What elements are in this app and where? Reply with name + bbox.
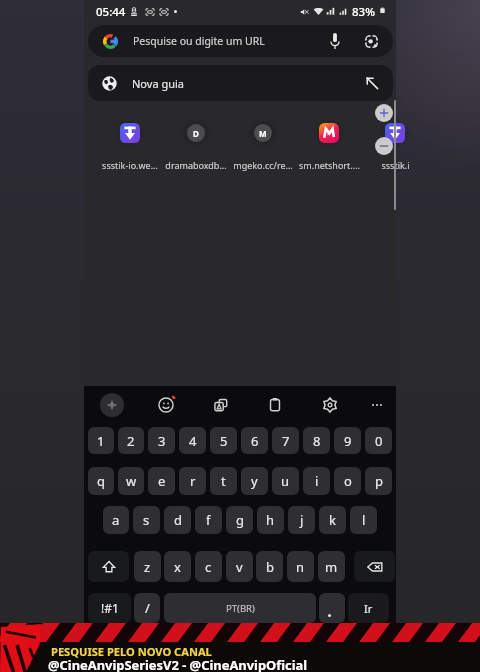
button[interactable]: Pesquise ou digite um URL xyxy=(88,25,393,57)
button[interactable]: 6 xyxy=(241,427,268,454)
button[interactable]: i xyxy=(303,467,330,495)
staticText: PESQUISE PELO NOVO CANAL xyxy=(51,644,212,659)
button[interactable]: c xyxy=(195,551,222,582)
staticText: 83% xyxy=(352,4,375,20)
button[interactable]: v xyxy=(226,551,253,582)
button[interactable]: Shift xyxy=(88,551,129,582)
button[interactable]: ssstik.i xyxy=(362,117,428,173)
other: Voice search xyxy=(329,32,341,50)
button[interactable]: Emoji xyxy=(154,393,178,417)
button[interactable]: 1 xyxy=(88,427,114,454)
button[interactable]: 7 xyxy=(272,427,299,454)
button[interactable]: 2 xyxy=(118,427,144,454)
staticText: o xyxy=(344,472,352,490)
staticText: m xyxy=(325,558,338,576)
button[interactable]: s xyxy=(133,506,160,534)
button[interactable]: Settings xyxy=(318,393,342,417)
button[interactable]: More options xyxy=(365,393,389,417)
staticText: a xyxy=(112,511,120,529)
staticText: p xyxy=(375,472,383,490)
staticText: 05:44 xyxy=(96,4,126,20)
button[interactable]: 8 xyxy=(303,427,330,454)
button[interactable]: 5 xyxy=(210,427,237,454)
staticText: sm.netshort.... xyxy=(299,159,360,171)
button[interactable]: AI assist xyxy=(100,393,124,417)
staticText: d xyxy=(174,511,182,529)
button[interactable]: q xyxy=(88,467,114,495)
button[interactable]: !#1 xyxy=(88,593,131,623)
button[interactable]: t xyxy=(210,467,237,495)
staticText: c xyxy=(205,558,212,576)
staticText: z xyxy=(144,558,151,576)
button[interactable]: 9 xyxy=(334,427,361,454)
staticText: 7 xyxy=(282,432,290,450)
button[interactable]: Nova guia xyxy=(88,65,393,101)
button[interactable]: w xyxy=(118,467,144,495)
button[interactable]: u xyxy=(272,467,299,495)
staticText: 2 xyxy=(127,432,135,450)
staticText: Ir xyxy=(364,601,373,616)
staticText: / xyxy=(145,599,150,617)
staticText: g xyxy=(236,511,244,529)
button[interactable]: e xyxy=(148,467,175,495)
staticText: i xyxy=(315,472,319,490)
staticText: h xyxy=(266,511,275,529)
staticText: u xyxy=(281,472,290,490)
button[interactable]: Clipboard xyxy=(263,393,287,417)
button[interactable]: k xyxy=(319,506,346,534)
other: Google Lens xyxy=(364,34,379,49)
button[interactable]: 0 xyxy=(365,427,392,454)
button[interactable]: j xyxy=(288,506,315,534)
button[interactable]: h xyxy=(257,506,284,534)
button[interactable]: z xyxy=(134,551,161,582)
button[interactable]: Stickers xyxy=(209,393,233,417)
button[interactable]: ssstik-io.we... xyxy=(97,117,163,173)
button[interactable]: d xyxy=(164,506,191,534)
button[interactable]: Ir xyxy=(348,593,389,623)
staticText: 3 xyxy=(158,432,166,450)
staticText: dramaboxdb... xyxy=(165,159,227,171)
other: Open xyxy=(365,76,379,90)
button[interactable]: r xyxy=(179,467,206,495)
button[interactable]: a xyxy=(103,506,129,534)
staticText: Nova guia xyxy=(132,76,184,91)
staticText: k xyxy=(329,511,336,529)
staticText: w xyxy=(126,472,137,490)
button[interactable]: b xyxy=(256,551,283,582)
button[interactable]: Zoom in xyxy=(375,104,393,122)
button[interactable]: l xyxy=(350,506,377,534)
staticText: x xyxy=(174,558,181,576)
button[interactable]: / xyxy=(134,593,160,623)
staticText: r xyxy=(190,472,196,490)
staticText: Pesquise ou digite um URL xyxy=(133,34,265,48)
button[interactable]: Zoom out xyxy=(375,137,393,155)
staticText: q xyxy=(97,472,105,490)
staticText: j xyxy=(300,511,304,529)
button[interactable]: PT(BR) xyxy=(164,593,316,623)
staticText: l xyxy=(362,511,366,529)
staticText: ssstik-io.we... xyxy=(102,159,158,171)
button[interactable]: 3 xyxy=(148,427,175,454)
button[interactable]: m xyxy=(318,551,345,582)
staticText: 6 xyxy=(251,432,259,450)
button[interactable]: n xyxy=(287,551,314,582)
button[interactable]: M xyxy=(230,117,296,173)
staticText: s xyxy=(143,511,150,529)
button[interactable]: o xyxy=(334,467,361,495)
button[interactable]: Backspace xyxy=(354,551,395,582)
staticText: @CineAnvipSeriesV2 - @CineAnvipOficial xyxy=(48,656,308,672)
staticText: 1 xyxy=(97,432,105,450)
button[interactable]: y xyxy=(241,467,268,495)
staticText: b xyxy=(266,558,274,576)
button[interactable]: g xyxy=(226,506,253,534)
button[interactable] xyxy=(319,593,345,623)
button[interactable]: f xyxy=(195,506,222,534)
staticText: D xyxy=(193,128,199,139)
button[interactable]: x xyxy=(164,551,191,582)
button[interactable]: D xyxy=(163,117,229,173)
staticText: M xyxy=(259,128,267,139)
button[interactable]: 4 xyxy=(179,427,206,454)
staticText: ssstik.i xyxy=(381,159,410,171)
button[interactable]: sm.netshort.... xyxy=(296,117,362,173)
button[interactable]: p xyxy=(365,467,392,495)
